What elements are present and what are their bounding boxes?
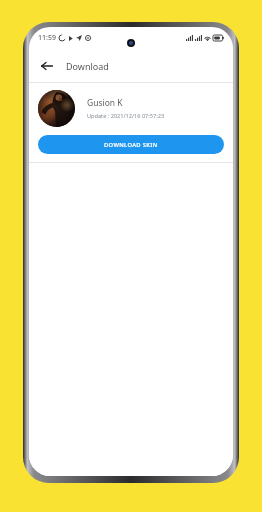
staticText: DOWNLOAD SKIN <box>104 141 158 149</box>
staticText: 11:59 <box>38 33 56 43</box>
staticText: Gusion K <box>87 97 123 109</box>
button[interactable]: Back <box>34 53 60 79</box>
button[interactable]: Gusion K <box>29 83 233 133</box>
button[interactable]: DOWNLOAD SKIN <box>38 135 224 154</box>
staticText: Update : 2021/12/16 07:57:23 <box>87 112 165 120</box>
staticText: Download <box>66 60 109 72</box>
